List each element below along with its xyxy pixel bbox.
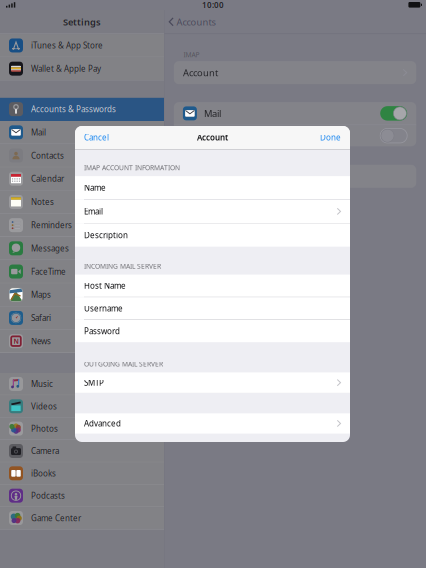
staticText: News	[31, 336, 51, 346]
staticText: Host Name	[84, 280, 126, 291]
staticText: Notes	[31, 197, 54, 207]
staticText: Cancel	[84, 132, 109, 143]
button[interactable]: N	[0, 330, 164, 353]
button[interactable]: Mail	[0, 121, 164, 144]
staticText: Username	[84, 303, 123, 314]
staticText: Maps	[31, 289, 51, 300]
staticText: Music	[31, 379, 53, 389]
staticText: Mail	[31, 127, 46, 138]
button[interactable]: FaceTime	[0, 260, 164, 283]
staticText: Name	[84, 182, 106, 193]
button[interactable]: SMTP	[75, 372, 350, 393]
button[interactable]: Reminders	[0, 214, 164, 237]
button[interactable]: Contacts	[0, 144, 164, 167]
button[interactable]: Email	[75, 200, 350, 223]
staticText: Camera	[31, 446, 59, 456]
button[interactable]: Password	[75, 320, 350, 342]
button[interactable]: Camera	[0, 440, 164, 462]
button[interactable]: Calendar	[0, 167, 164, 191]
button[interactable]: Messages	[0, 237, 164, 260]
staticText: INCOMING MAIL SERVER	[84, 262, 161, 271]
staticText: iTunes & App Store	[31, 40, 103, 51]
staticText: Description	[84, 230, 128, 240]
button[interactable]: Name	[75, 176, 350, 199]
staticText: Accounts & Passwords	[31, 104, 116, 114]
staticText: Mail	[204, 107, 221, 120]
staticText: Safari	[31, 313, 51, 323]
staticText: Videos	[31, 401, 57, 412]
staticText: Calendar	[31, 173, 64, 184]
staticText: Photos	[31, 423, 58, 434]
button[interactable]: iBooks	[0, 462, 164, 485]
button[interactable]: Username	[75, 297, 350, 319]
button[interactable]: Notes	[0, 191, 164, 214]
staticText: Wallet & Apple Pay	[31, 63, 101, 74]
staticText: Game Center	[31, 513, 81, 523]
staticText: N	[13, 337, 18, 346]
button[interactable]: Photos	[0, 418, 164, 440]
staticText: Advanced	[84, 418, 121, 429]
staticText: Done	[320, 132, 341, 143]
button[interactable]: Videos	[0, 395, 164, 418]
staticText: OUTGOING MAIL SERVER	[84, 359, 163, 368]
button[interactable]: Done	[311, 126, 350, 149]
staticText: iBooks	[31, 468, 56, 479]
button[interactable]: Advanced	[75, 413, 350, 434]
button[interactable]: Wallet & Apple Pay	[0, 57, 164, 80]
staticText: Account	[197, 132, 228, 143]
button[interactable]: iTunes & App Store	[0, 34, 164, 57]
staticText: Password	[84, 326, 120, 336]
button[interactable]: Podcasts	[0, 485, 164, 507]
staticText: Podcasts	[31, 490, 65, 501]
button[interactable]: Host Name	[75, 275, 350, 297]
staticText: FaceTime	[31, 266, 66, 277]
button[interactable]: Description	[75, 223, 350, 247]
button[interactable]: Music	[0, 373, 164, 395]
staticText: IMAP ACCOUNT INFORMATION	[84, 163, 180, 172]
staticText: Accounts	[176, 16, 215, 28]
staticText: SMTP	[84, 377, 104, 388]
button[interactable]: Game Center	[0, 507, 164, 529]
button[interactable]: Cancel	[75, 126, 118, 149]
staticText: Email	[84, 206, 103, 217]
staticText: IMAP	[183, 50, 199, 59]
staticText: Reminders	[31, 220, 72, 230]
staticText: Account	[183, 66, 218, 79]
button[interactable]: Safari	[0, 307, 164, 330]
button[interactable]: Accounts & Passwords	[0, 98, 164, 121]
staticText: Settings	[63, 16, 101, 28]
staticText: 10:00	[202, 0, 224, 10]
staticText: Messages	[31, 243, 69, 254]
button[interactable]: Maps	[0, 283, 164, 307]
staticText: Contacts	[31, 150, 64, 161]
